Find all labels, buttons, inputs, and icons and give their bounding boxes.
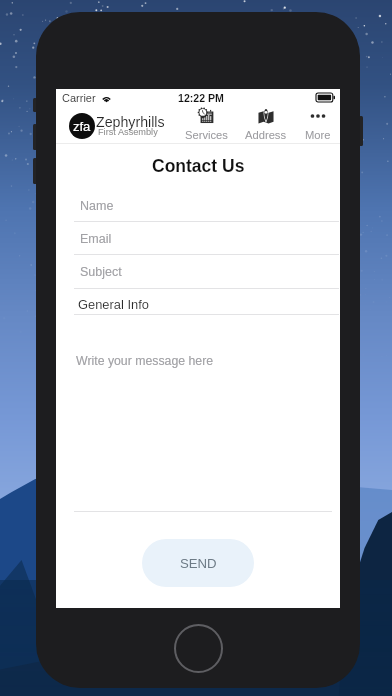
other: Address bbox=[258, 108, 274, 124]
staticText: Zephyrhills bbox=[96, 114, 165, 130]
staticText: Subject bbox=[80, 265, 122, 279]
staticText: Email bbox=[80, 232, 112, 246]
button[interactable]: More bbox=[291, 105, 345, 144]
staticText: Services bbox=[185, 129, 228, 142]
button[interactable]: General Info bbox=[78, 295, 149, 313]
staticText: More bbox=[305, 129, 331, 142]
staticText: SEND bbox=[180, 556, 217, 571]
staticText: Contact Us bbox=[152, 156, 245, 176]
button[interactable]: SEND bbox=[142, 539, 254, 587]
staticText: Carrier bbox=[62, 92, 96, 104]
button[interactable]: Email bbox=[80, 230, 112, 248]
button[interactable]: Name bbox=[80, 197, 114, 215]
button[interactable]: Services bbox=[179, 105, 233, 144]
button[interactable]: Subject bbox=[80, 263, 122, 281]
other: Services bbox=[198, 108, 214, 124]
staticText: zfa bbox=[73, 119, 91, 134]
button[interactable]: Address bbox=[239, 105, 293, 144]
staticText: Name bbox=[80, 199, 114, 213]
staticText: Write your message here bbox=[76, 354, 214, 368]
staticText: General Info bbox=[78, 297, 149, 311]
other: More bbox=[310, 108, 326, 124]
staticText: 12:22 PM bbox=[178, 92, 224, 104]
staticText: Address bbox=[245, 129, 287, 142]
staticText: First Assembly bbox=[98, 127, 158, 137]
